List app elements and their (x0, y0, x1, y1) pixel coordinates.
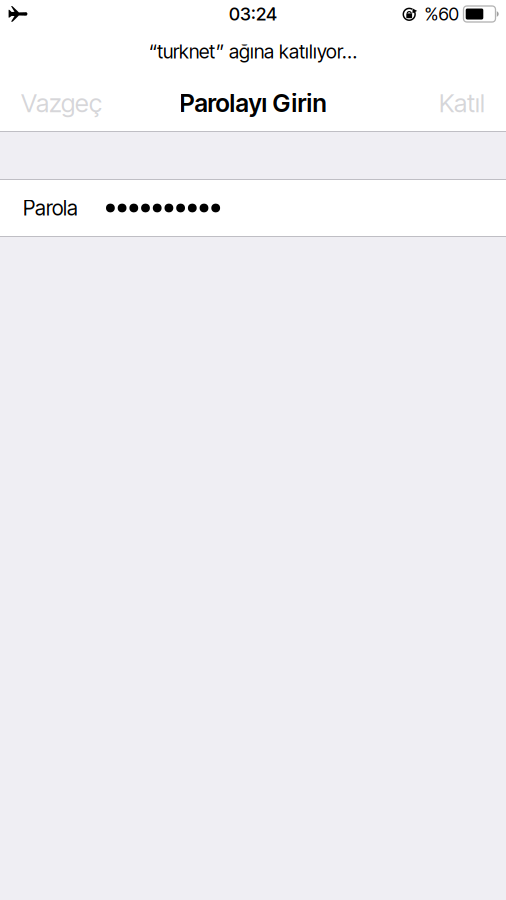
button[interactable]: Parola (0, 180, 506, 236)
staticText: “turknet” ağına katılıyor… (149, 40, 357, 63)
button[interactable]: Vazgeç (0, 80, 123, 126)
staticText: Katıl (439, 88, 485, 118)
staticText: %60 (424, 3, 458, 25)
staticText: 03:24 (229, 3, 277, 25)
staticText: Parola (23, 195, 78, 220)
staticText: Vazgeç (21, 88, 102, 118)
staticText: Parolayı Girin (179, 88, 326, 118)
button[interactable]: Katıl (418, 80, 506, 126)
